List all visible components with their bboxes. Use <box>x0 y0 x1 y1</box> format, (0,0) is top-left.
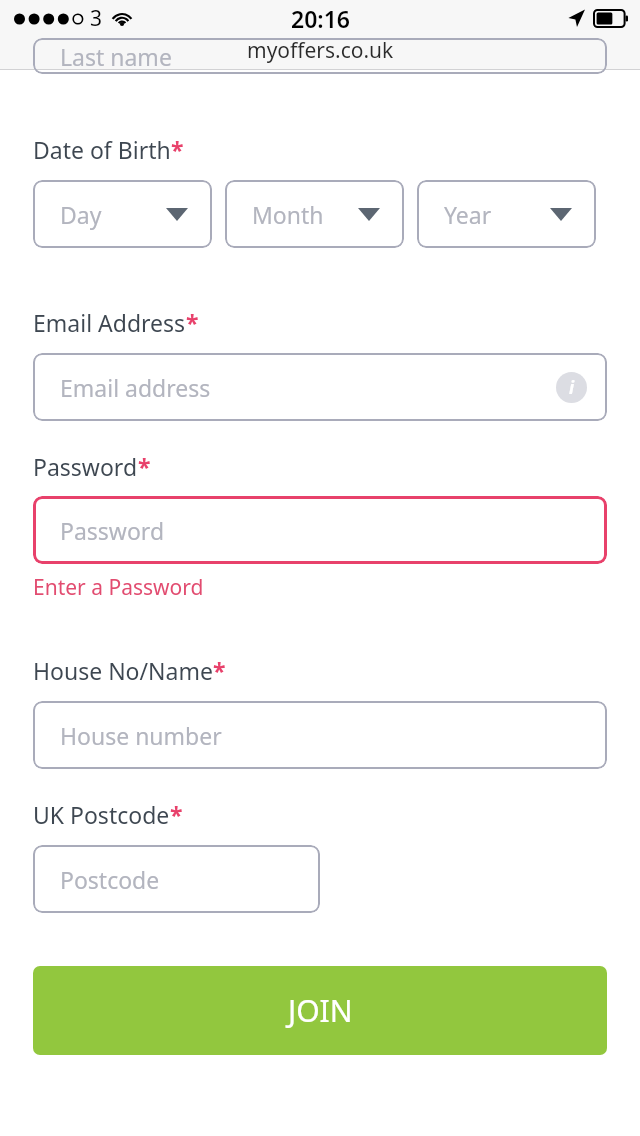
staticText: * <box>186 307 199 338</box>
staticText: Month <box>252 199 324 230</box>
staticText: Date of Birth <box>33 134 171 165</box>
staticText: UK Postcode <box>33 799 170 830</box>
staticText: Enter a Password <box>33 573 204 602</box>
staticText: * <box>213 655 226 686</box>
staticText: 20:16 <box>291 3 350 34</box>
staticText: Year <box>444 199 492 230</box>
staticText: * <box>138 451 151 482</box>
button[interactable]: Month <box>225 180 404 248</box>
staticText: House No/Name <box>33 655 213 686</box>
staticText: House number <box>60 720 222 751</box>
staticText: i <box>569 376 575 399</box>
button[interactable]: JOIN <box>33 966 607 1055</box>
staticText: Last name <box>60 41 172 72</box>
staticText: 3 <box>90 4 103 33</box>
staticText: * <box>171 134 184 165</box>
staticText: Email Address <box>33 307 186 338</box>
staticText: Password <box>60 515 165 546</box>
staticText: Day <box>60 199 102 230</box>
button[interactable]: Postcode <box>33 845 320 913</box>
staticText: JOIN <box>288 990 353 1031</box>
button[interactable]: Email address <box>33 353 607 421</box>
button[interactable]: Last name <box>33 38 607 74</box>
staticText: * <box>170 799 183 830</box>
button[interactable]: Password <box>33 496 607 564</box>
staticText: Password <box>33 451 138 482</box>
staticText: Email address <box>60 372 211 403</box>
staticText: Postcode <box>60 864 160 895</box>
staticText: myoffers.co.uk <box>247 36 394 65</box>
button[interactable]: Year <box>417 180 596 248</box>
button[interactable]: House number <box>33 701 607 769</box>
button[interactable]: Day <box>33 180 212 248</box>
